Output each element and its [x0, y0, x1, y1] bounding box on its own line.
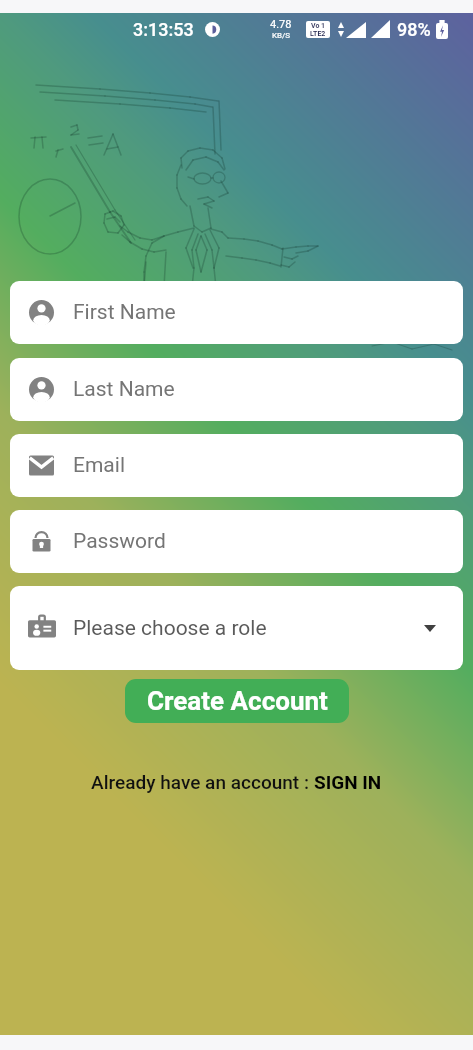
- staticText: Already have an account :: [91, 771, 314, 793]
- staticText: 4.78: [270, 18, 292, 31]
- staticText: Password: [73, 529, 166, 554]
- staticText: KB/S: [272, 31, 291, 40]
- staticText: 98%: [397, 19, 431, 40]
- staticText: Create Account: [147, 686, 328, 716]
- staticText: Email: [73, 453, 125, 478]
- staticText: First Name: [73, 300, 176, 325]
- button[interactable]: Password: [10, 510, 463, 573]
- button[interactable]: Last Name: [10, 358, 463, 421]
- button[interactable]: Email: [10, 434, 463, 497]
- staticText: SIGN IN: [314, 771, 382, 793]
- staticText: 3:13:53: [133, 19, 194, 40]
- button[interactable]: Please choose a role: [10, 586, 463, 670]
- staticText: Last Name: [73, 377, 175, 402]
- button[interactable]: Create Account: [125, 679, 349, 723]
- button[interactable]: SIGN IN: [314, 771, 382, 793]
- staticText: LTE2: [310, 30, 326, 38]
- staticText: Vo 1: [311, 22, 326, 30]
- staticText: Please choose a role: [73, 616, 267, 641]
- button[interactable]: First Name: [10, 281, 463, 344]
